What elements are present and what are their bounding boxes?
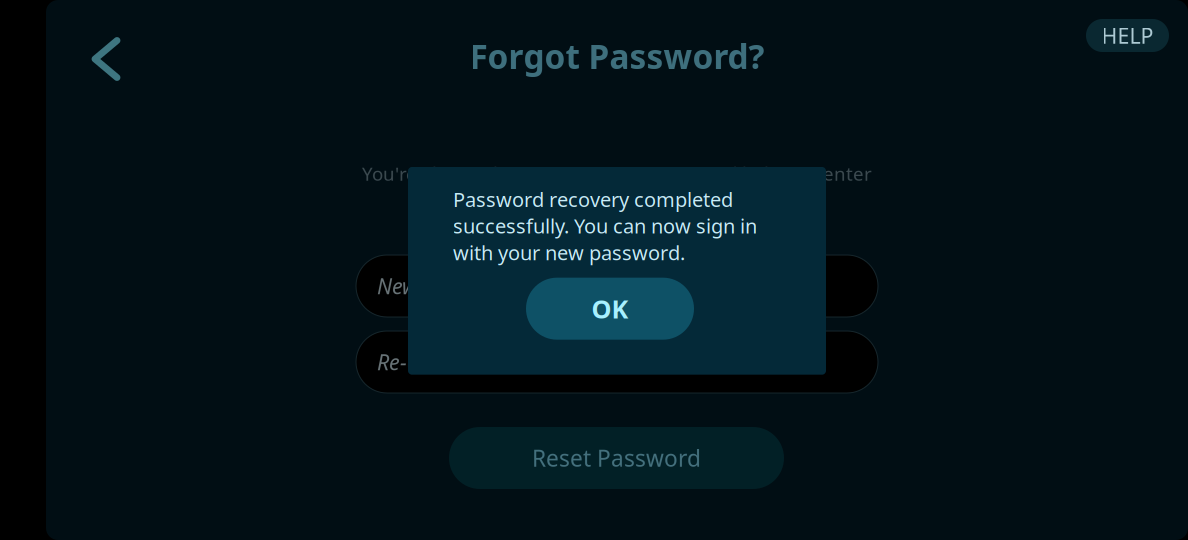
button[interactable]: Back <box>77 23 135 95</box>
staticText: New Password <box>377 272 512 300</box>
staticText: HELP <box>1101 21 1153 50</box>
staticText: You're almost there! Enter a new passwor… <box>362 161 872 186</box>
button[interactable]: Reset Password <box>449 427 784 489</box>
button[interactable]: HELP <box>1086 19 1169 52</box>
button[interactable]: OK <box>526 278 694 340</box>
staticText: Forgot Password? <box>469 34 764 78</box>
staticText: Re-enter Password <box>377 348 551 376</box>
staticText: OK <box>591 292 628 325</box>
staticText: Reset Password <box>532 443 701 473</box>
staticText: Password recovery completed successfully… <box>453 186 757 266</box>
